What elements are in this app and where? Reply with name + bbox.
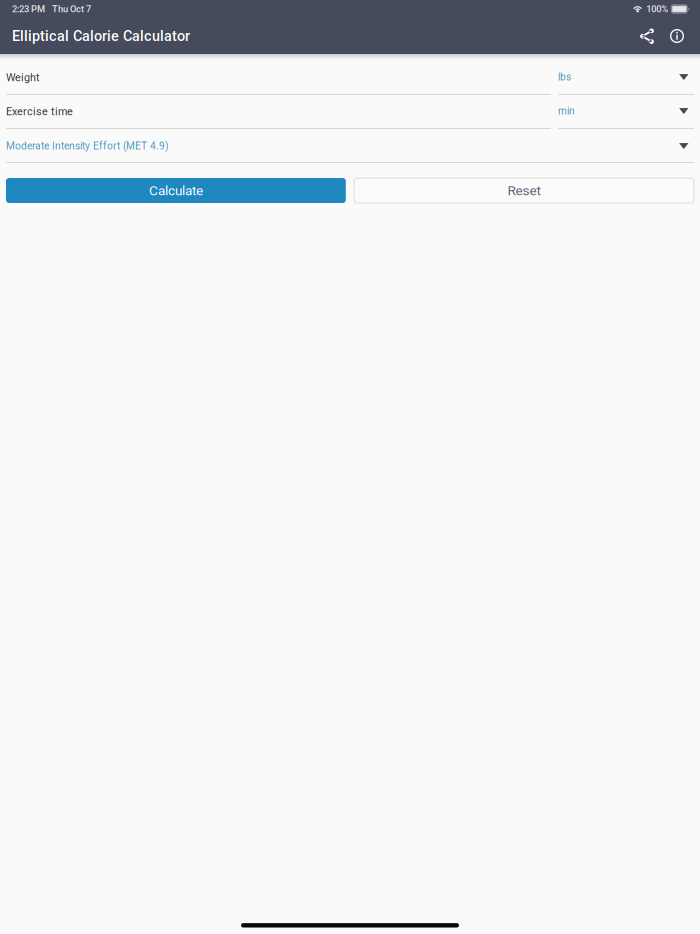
staticText: Weight (6, 71, 40, 84)
button[interactable]: Info (662, 18, 692, 54)
button[interactable]: Share (632, 18, 662, 54)
staticText: lbs (558, 71, 571, 83)
staticText: min (558, 105, 575, 117)
button[interactable]: Calculate (6, 178, 346, 203)
staticText: 2:23 PM (12, 3, 45, 14)
staticText: Moderate Intensity Effort (MET 4.9) (6, 140, 169, 152)
staticText: Elliptical Calorie Calculator (12, 28, 190, 44)
staticText: Exercise time (6, 105, 73, 118)
staticText: Thu Oct 7 (52, 3, 91, 14)
staticText: 100% (646, 3, 668, 14)
staticText: Reset (508, 182, 541, 198)
button[interactable]: Reset (354, 178, 694, 203)
staticText: Calculate (149, 182, 203, 198)
